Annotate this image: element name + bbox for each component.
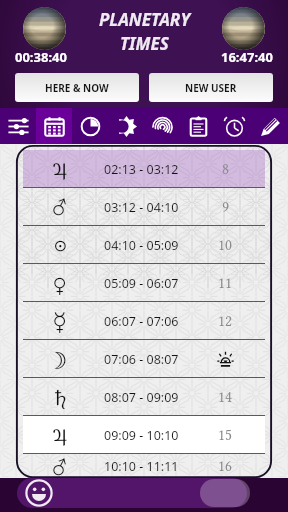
staticText: ☿ xyxy=(53,308,67,335)
button[interactable]: Emoji xyxy=(25,479,53,507)
staticText: 02:13 - 03:12 xyxy=(104,161,179,178)
button[interactable]: Planetary hours xyxy=(72,108,108,144)
staticText: ♀ xyxy=(53,270,67,297)
staticText: ♃ xyxy=(52,422,68,449)
staticText: ♃ xyxy=(52,156,68,183)
button[interactable] xyxy=(17,478,247,508)
staticText: 16:47:40 xyxy=(221,48,273,66)
staticText: NEW USER xyxy=(185,81,237,95)
staticText: 8 xyxy=(222,161,229,178)
button[interactable]: ☽ xyxy=(16,340,272,378)
button[interactable]: ♀ xyxy=(16,264,272,302)
button[interactable]: HERE & NOW xyxy=(15,73,139,102)
button[interactable]: Report xyxy=(180,108,216,144)
button[interactable]: Day and night xyxy=(108,108,144,144)
staticText: 00:38:40 xyxy=(15,48,67,66)
staticText: 05:09 - 06:07 xyxy=(104,275,179,292)
staticText: 03:12 - 04:10 xyxy=(104,199,179,216)
button[interactable]: Settings xyxy=(0,108,36,144)
staticText: 04:10 - 05:09 xyxy=(104,237,179,254)
staticText: 14 xyxy=(218,389,232,406)
staticText: 12 xyxy=(218,313,232,330)
staticText: 09:09 - 10:10 xyxy=(104,427,179,444)
button[interactable]: ☉ xyxy=(16,226,272,264)
staticText: TIMES xyxy=(120,32,169,55)
staticText: ♄ xyxy=(54,384,67,411)
button[interactable]: ☿ xyxy=(16,302,272,340)
staticText: ☉ xyxy=(52,232,69,259)
staticText: ♂ xyxy=(52,194,69,221)
staticText: HERE & NOW xyxy=(45,81,109,95)
button[interactable]: ♂ xyxy=(16,454,272,478)
staticText: 15 xyxy=(218,427,232,444)
staticText: 06:07 - 07:06 xyxy=(104,313,179,330)
button[interactable]: NEW USER xyxy=(149,73,273,102)
button[interactable]: Calendar xyxy=(36,108,72,144)
button[interactable]: Biorhythm xyxy=(144,108,180,144)
button[interactable]: Notes xyxy=(252,108,288,144)
staticText: 10 xyxy=(218,237,232,254)
staticText: 9 xyxy=(222,199,229,216)
button[interactable]: ♄ xyxy=(16,378,272,416)
staticText: 07:06 - 08:07 xyxy=(104,351,179,368)
button[interactable]: Alarm xyxy=(216,108,252,144)
staticText: ♂ xyxy=(52,454,69,478)
staticText: 11 xyxy=(218,275,232,292)
staticText: 08:07 - 09:09 xyxy=(104,389,179,406)
staticText: 10:10 - 11:11 xyxy=(104,458,179,475)
staticText: 16 xyxy=(218,458,232,475)
staticText: PLANETARY xyxy=(99,8,190,31)
button[interactable]: ♃ xyxy=(16,150,272,188)
button[interactable]: ♂ xyxy=(16,188,272,226)
staticText: ☽ xyxy=(54,346,67,373)
button[interactable]: ♃ xyxy=(16,416,272,454)
